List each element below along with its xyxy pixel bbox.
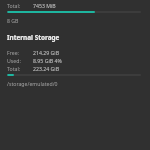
button[interactable]: Internal Storage — [7, 33, 141, 42]
staticText: 214.29 GiB — [33, 49, 60, 56]
staticText: 8.95 GiB 4% — [33, 57, 62, 64]
staticText: 7453 MiB — [33, 2, 56, 9]
staticText: Internal Storage — [7, 33, 60, 42]
staticText: Total: — [7, 2, 33, 9]
staticText: 8 GB — [7, 17, 19, 24]
staticText: Used: — [7, 57, 33, 64]
staticText: Total: — [7, 65, 33, 72]
staticText: 223.24 GiB — [33, 65, 60, 72]
staticText: Free: — [7, 49, 33, 56]
button[interactable]: /storage/emulated/0 — [7, 80, 141, 87]
staticText: /storage/emulated/0 — [7, 80, 58, 87]
